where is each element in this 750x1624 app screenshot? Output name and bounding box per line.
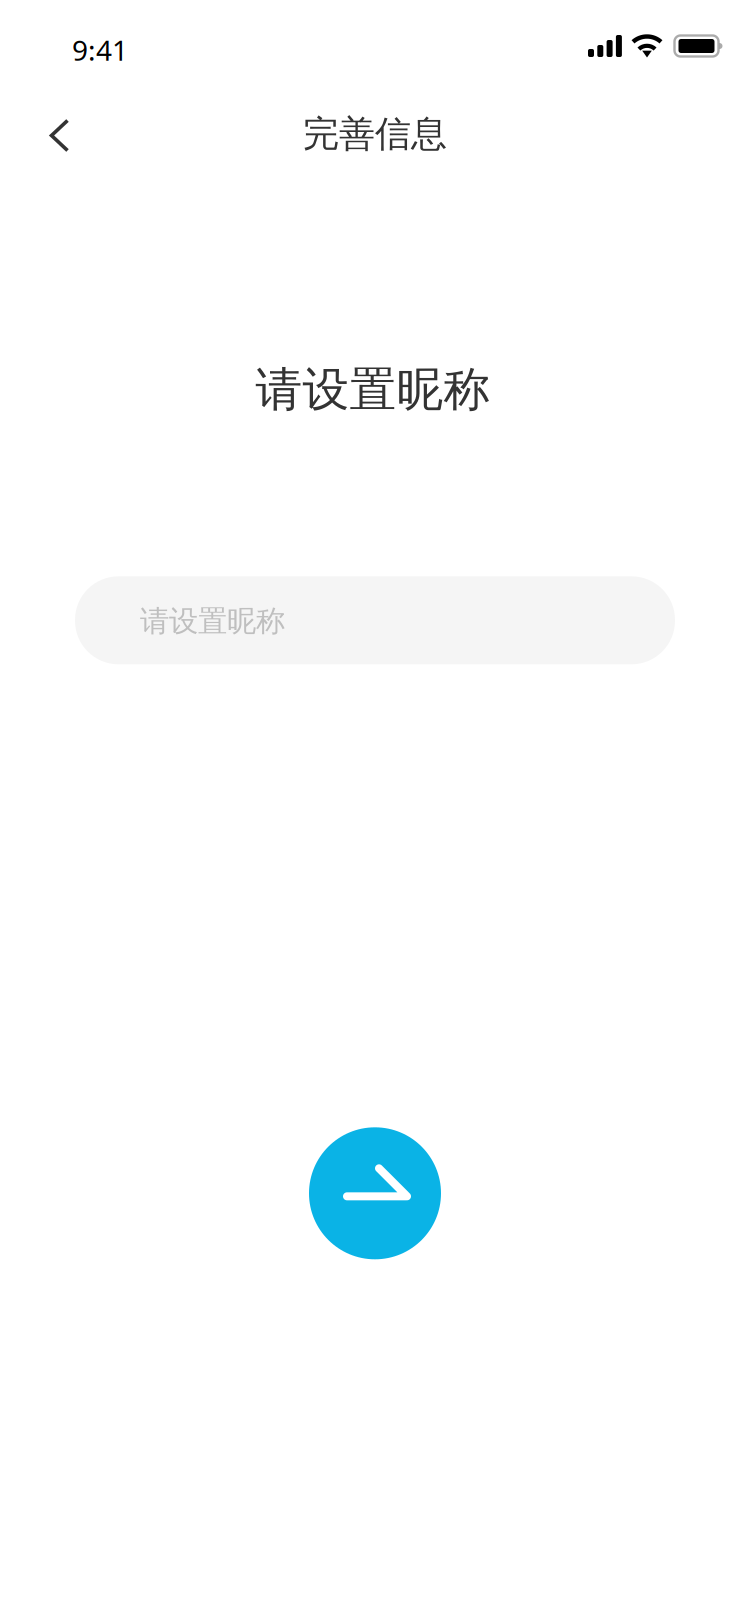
button[interactable]: Next	[309, 1127, 441, 1259]
staticText: 9:41	[72, 31, 128, 69]
staticText: 完善信息	[303, 112, 447, 156]
staticText: 请设置昵称	[255, 361, 490, 418]
staticText: 请设置昵称	[140, 603, 285, 639]
button[interactable]: Back	[0, 92, 120, 180]
button[interactable]: 请设置昵称	[75, 576, 675, 664]
